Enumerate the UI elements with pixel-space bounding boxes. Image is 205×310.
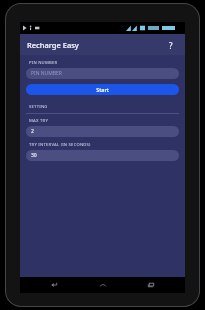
staticText: Recharge Easy (27, 40, 79, 50)
staticText: TRY INTERVAL (IN SECONDS) (29, 142, 91, 148)
button[interactable]: 30 (26, 150, 179, 161)
button[interactable]: Back (40, 277, 68, 293)
staticText: SETTING (29, 104, 48, 110)
staticText: 30 (31, 152, 37, 159)
staticText: MAX TRY (29, 118, 49, 124)
button[interactable]: Start (26, 84, 179, 95)
button[interactable]: PIN NUMBER (26, 68, 179, 79)
button[interactable]: Help (164, 38, 178, 52)
staticText: Start (96, 86, 109, 93)
staticText: PIN NUMBER (31, 70, 62, 77)
button[interactable]: 2 (26, 126, 179, 137)
button[interactable]: Home (89, 277, 117, 293)
button[interactable]: Recent apps (137, 277, 165, 293)
staticText: ? (169, 40, 173, 51)
staticText: 2 (31, 128, 34, 135)
staticText: PIN NUMBER (29, 60, 58, 66)
